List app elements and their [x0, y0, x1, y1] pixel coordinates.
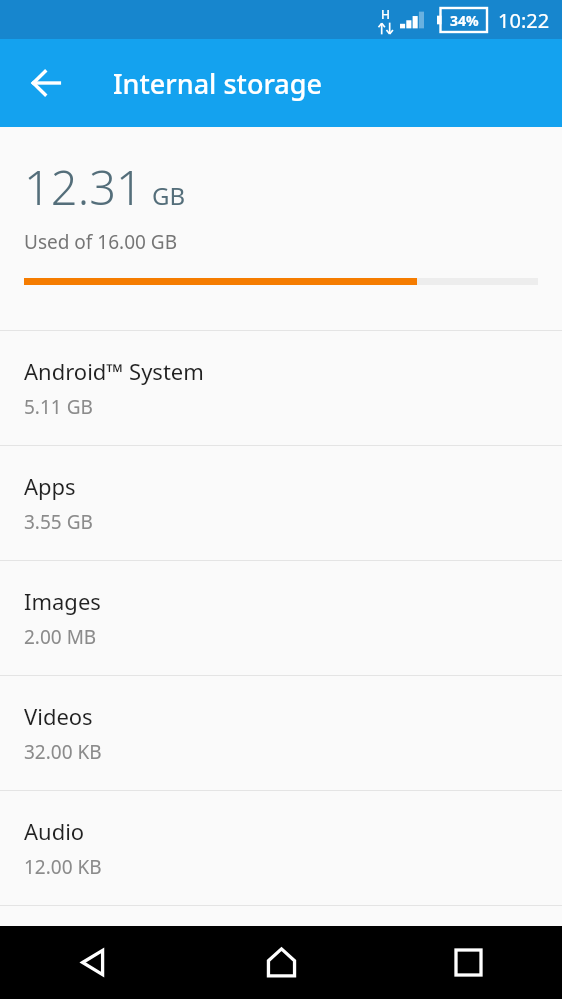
button[interactable]: Images	[0, 561, 562, 675]
staticText: Used of 16.00 GB	[24, 229, 177, 255]
staticText: 2.00 MB	[24, 624, 97, 650]
staticText: GB	[152, 179, 186, 212]
button[interactable]: Android™ System	[0, 331, 562, 445]
button[interactable]: Home	[188, 926, 375, 999]
staticText: 12.00 KB	[24, 854, 102, 880]
staticText: H	[381, 6, 390, 22]
staticText: Audio	[24, 816, 85, 846]
staticText: 12.31	[24, 155, 143, 219]
staticText: Videos	[24, 701, 93, 731]
staticText: 5.11 GB	[24, 394, 93, 420]
button[interactable]: Recent apps	[375, 926, 562, 999]
staticText: 10:22	[498, 7, 550, 34]
button[interactable]: Videos	[0, 676, 562, 790]
button[interactable]: Back	[15, 51, 79, 115]
staticText: Images	[24, 586, 101, 616]
staticText: 32.00 KB	[24, 739, 102, 765]
staticText: Apps	[24, 471, 76, 501]
staticText: 34%	[450, 11, 479, 30]
button[interactable]: Back	[0, 926, 188, 999]
staticText: 3.55 GB	[24, 509, 93, 535]
staticText: Android™ System	[24, 356, 204, 386]
button[interactable]: Apps	[0, 446, 562, 560]
staticText: Internal storage	[113, 65, 322, 102]
button[interactable]: Audio	[0, 791, 562, 905]
